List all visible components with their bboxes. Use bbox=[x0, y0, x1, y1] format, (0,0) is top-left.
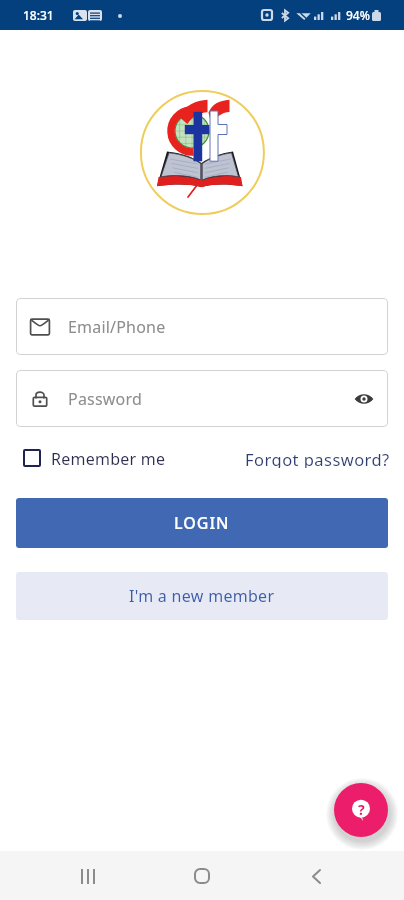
staticText: 94% bbox=[346, 7, 370, 23]
staticText: LOGIN bbox=[174, 512, 230, 534]
button[interactable]: Recents bbox=[68, 856, 108, 896]
button[interactable]: Email/Phone bbox=[16, 298, 388, 355]
button[interactable]: LOGIN bbox=[16, 498, 388, 548]
button[interactable]: Password bbox=[16, 370, 388, 427]
button[interactable]: I'm a new member bbox=[16, 572, 388, 620]
staticText: Forgot password? bbox=[245, 448, 390, 468]
button[interactable]: Help bbox=[334, 783, 388, 837]
staticText: Remember me bbox=[51, 448, 166, 468]
staticText: Email/Phone bbox=[68, 316, 166, 338]
staticText: ? bbox=[358, 800, 365, 819]
button[interactable]: Back bbox=[296, 856, 336, 896]
staticText: I'm a new member bbox=[129, 585, 275, 607]
staticText: Password bbox=[68, 388, 142, 410]
staticText: 18:31 bbox=[23, 7, 54, 23]
button[interactable]: Forgot password? bbox=[245, 448, 390, 468]
button[interactable]: Remember me bbox=[23, 448, 166, 468]
button[interactable]: Home bbox=[182, 856, 222, 896]
